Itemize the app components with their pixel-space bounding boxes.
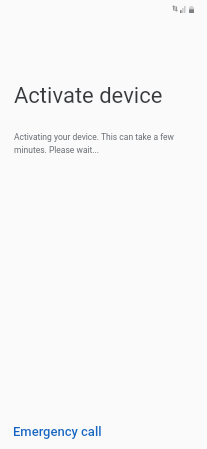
staticText: Emergency call: [13, 424, 102, 439]
staticText: Activating your device. This can take a …: [14, 132, 193, 155]
staticText: Activate device: [14, 83, 163, 109]
button[interactable]: Emergency call: [0, 414, 116, 449]
other: Battery: [189, 6, 194, 13]
other: Mobile data activity: [172, 5, 178, 12]
other: Signal strength: [180, 6, 186, 13]
